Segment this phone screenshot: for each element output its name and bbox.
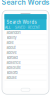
button[interactable]: absorb [4, 70, 46, 75]
button[interactable]: SAVED [13, 25, 26, 30]
staticText: ability [6, 35, 16, 40]
staticText: abroad [6, 55, 17, 60]
button[interactable]: about [4, 45, 46, 50]
staticText: absorb [6, 70, 17, 75]
staticText: above [6, 50, 16, 55]
button[interactable]: absence [4, 60, 46, 65]
staticText: absolute [6, 65, 20, 70]
staticText: Search Words [6, 20, 36, 25]
staticText: abuse [6, 75, 16, 80]
button[interactable]: abroad [4, 55, 46, 60]
button[interactable]: abandon [4, 30, 46, 35]
staticText: absence [6, 60, 20, 65]
staticText: RECENT [28, 26, 40, 29]
button[interactable]: above [4, 50, 46, 55]
button[interactable]: able [4, 40, 46, 45]
staticText: abandon [6, 30, 20, 35]
staticText: about [6, 45, 15, 50]
button[interactable]: absolute [4, 65, 46, 70]
button[interactable]: ALL [2, 25, 13, 30]
staticText: Search Words [1, 0, 49, 6]
staticText: ALL [5, 26, 11, 29]
button[interactable]: ability [4, 35, 46, 40]
button[interactable]: abuse [4, 75, 46, 80]
button[interactable]: RECENT [26, 25, 41, 30]
staticText: SAVED [15, 26, 25, 29]
staticText: able [6, 40, 13, 45]
